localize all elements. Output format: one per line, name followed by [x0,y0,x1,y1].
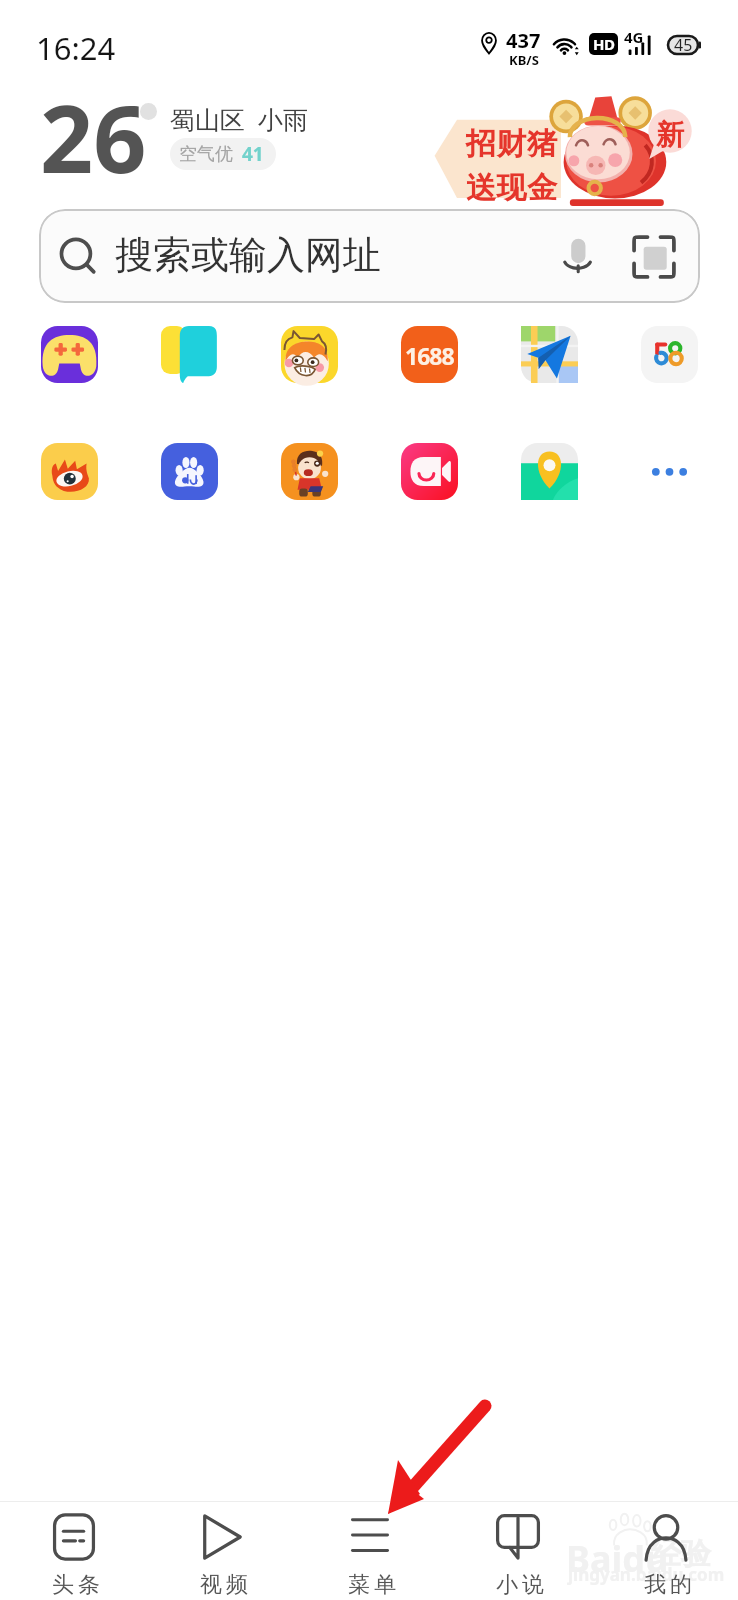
button[interactable]: 快手 [281,326,338,383]
staticText: 41 [242,141,264,167]
staticText: 我的 [642,1571,694,1599]
button[interactable]: 抖音短视频 [281,443,338,500]
staticText: 经验 [651,1535,711,1573]
staticText: HD [593,34,615,54]
staticText: 4G [624,27,644,47]
staticText: 新 [656,117,684,152]
button[interactable]: 头条 [0,1501,148,1600]
button[interactable]: 美拍 [401,443,458,500]
staticText: 45 [674,34,693,54]
staticText: 1688 [405,340,454,371]
button[interactable]: 58同城 [641,326,698,383]
button[interactable]: 视频 [148,1501,296,1600]
staticText: 视频 [198,1571,250,1599]
button[interactable]: Voice search [556,233,600,277]
button[interactable]: 1688 [401,326,458,383]
button[interactable]: 百度 [161,443,218,500]
staticText: Baidu [566,1534,669,1583]
button[interactable]: 微博 [41,443,98,500]
button[interactable]: Scan QR code [630,233,678,281]
staticText: 空气优 [179,143,233,166]
staticText: 送现金 [466,169,558,207]
button[interactable]: 高德地图 [521,326,578,383]
button[interactable]: 我的 [592,1501,738,1600]
staticText: 蜀山区 小雨 [170,102,309,136]
button[interactable]: 书城 [161,326,218,383]
staticText: jingyan.baidu.com [568,1563,725,1586]
button[interactable]: 招财猪送现金 promotion [430,82,700,206]
staticText: 搜索或输入网址 [115,231,381,279]
staticText: 26 [40,74,147,201]
button[interactable]: 游戏 [41,326,98,383]
staticText: 头条 [50,1571,102,1599]
button[interactable]: 菜单 [296,1501,444,1600]
staticText: 437 [506,27,541,54]
button[interactable]: 地图 [521,443,578,500]
staticText: KB/S [509,51,539,69]
staticText: 小说 [494,1571,546,1599]
button[interactable]: 搜索或输入网址 [39,209,700,303]
staticText: 菜单 [346,1571,398,1599]
button[interactable]: 更多 [641,443,698,500]
staticText: 16:24 [36,27,116,69]
staticText: 招财猪 [466,125,558,163]
button[interactable]: 小说 [444,1501,592,1600]
